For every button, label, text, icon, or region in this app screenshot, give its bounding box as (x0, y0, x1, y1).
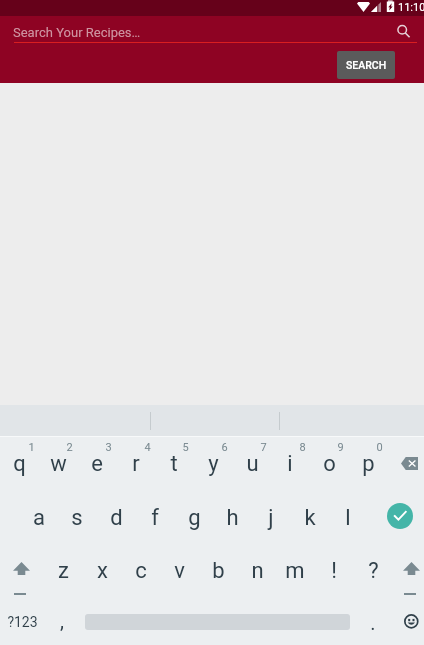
staticText: o (323, 451, 336, 477)
staticText: , (60, 609, 64, 632)
staticText: r (132, 451, 140, 477)
button[interactable] (315, 534, 354, 587)
staticText: i (287, 451, 293, 477)
staticText: f (151, 505, 159, 531)
staticText: n (251, 558, 264, 584)
button[interactable]: Shift (392, 533, 424, 586)
button[interactable]: Search (390, 18, 414, 42)
staticText: d (110, 505, 123, 531)
button[interactable] (77, 427, 116, 480)
staticText: 1 (28, 441, 35, 454)
button[interactable] (19, 482, 58, 535)
staticText: 2 (66, 441, 73, 454)
button[interactable] (39, 427, 78, 480)
staticText: 8 (299, 441, 306, 454)
staticText: ? (368, 558, 379, 584)
staticText: z (58, 558, 69, 584)
staticText: 3 (105, 441, 112, 454)
staticText: c (135, 558, 147, 584)
button[interactable] (276, 534, 315, 587)
staticText: e (91, 451, 103, 477)
staticText: 4 (144, 441, 151, 454)
staticText: g (188, 505, 201, 531)
button[interactable] (116, 427, 155, 480)
staticText: h (226, 505, 239, 531)
staticText: v (174, 558, 185, 584)
button[interactable] (194, 427, 233, 480)
staticText: 6 (221, 441, 228, 454)
button[interactable] (213, 482, 252, 535)
button[interactable] (58, 482, 97, 535)
button[interactable] (237, 534, 276, 587)
button[interactable] (160, 534, 199, 587)
staticText: k (304, 505, 316, 531)
staticText: 7 (260, 441, 267, 454)
staticText: 5 (182, 441, 189, 454)
staticText: a (33, 505, 45, 531)
button[interactable]: SEARCH (337, 51, 395, 79)
staticText: y (208, 451, 219, 477)
staticText: p (362, 451, 375, 477)
button[interactable] (121, 534, 160, 587)
staticText: Search Your Recipes… (13, 25, 141, 40)
button[interactable] (83, 534, 122, 587)
button[interactable] (155, 427, 194, 480)
button[interactable]: Enter (382, 498, 418, 534)
staticText: t (170, 451, 178, 477)
staticText: ?123 (7, 614, 38, 630)
button[interactable] (135, 482, 174, 535)
button[interactable] (2, 601, 44, 645)
button[interactable] (232, 427, 271, 480)
button[interactable] (353, 534, 392, 587)
staticText: s (71, 505, 83, 531)
staticText: q (13, 451, 26, 477)
button[interactable] (329, 482, 368, 535)
staticText: SEARCH (346, 59, 387, 71)
staticText: 9 (337, 441, 344, 454)
button[interactable] (199, 534, 238, 587)
button[interactable]: Emoji (394, 601, 424, 645)
button[interactable] (0, 427, 39, 480)
staticText: m (285, 558, 305, 584)
button[interactable] (44, 601, 82, 645)
staticText: l (345, 505, 351, 531)
button[interactable] (271, 427, 310, 480)
button[interactable] (252, 482, 291, 535)
staticText: w (50, 451, 67, 477)
button[interactable] (44, 534, 83, 587)
staticText: 0 (376, 441, 383, 454)
staticText: . (370, 611, 376, 634)
staticText: b (212, 558, 225, 584)
staticText: j (268, 505, 274, 531)
staticText: ! (331, 558, 337, 584)
staticText: x (97, 558, 108, 584)
button[interactable] (97, 482, 136, 535)
button[interactable] (290, 482, 329, 535)
button[interactable]: Backspace (388, 427, 424, 480)
staticText: 11:10 (398, 1, 424, 14)
button[interactable] (310, 427, 349, 480)
button[interactable] (348, 427, 387, 480)
button[interactable]: Shift (2, 533, 41, 586)
staticText: u (246, 451, 259, 477)
button[interactable] (174, 482, 213, 535)
button[interactable] (354, 601, 392, 645)
